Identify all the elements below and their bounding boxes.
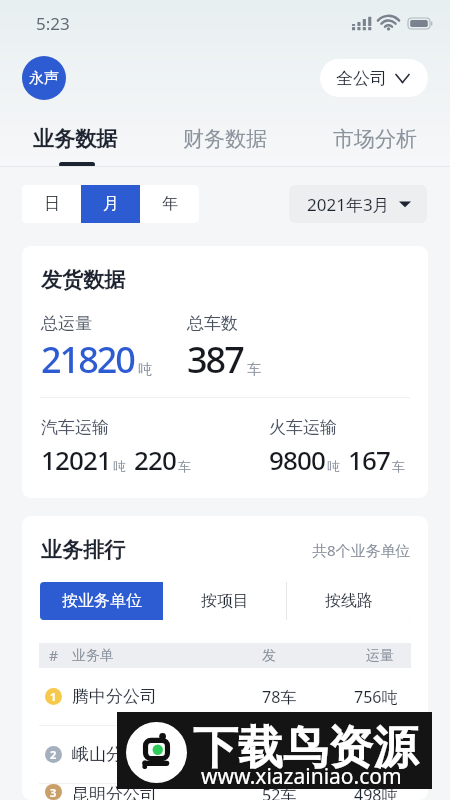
staticText: 21820 — [41, 335, 134, 384]
staticText: 业务数据 — [33, 126, 117, 152]
button[interactable]: 财务数据 — [150, 126, 300, 162]
staticText: 1 — [50, 689, 57, 704]
staticText: 66车 — [262, 744, 297, 766]
button[interactable]: 年 — [140, 185, 199, 223]
staticText: 220 — [134, 442, 176, 477]
staticText: 财务数据 — [183, 126, 267, 152]
staticText: 610吨 — [354, 744, 398, 766]
staticText: 78车 — [262, 686, 297, 708]
staticText: 3 — [50, 785, 57, 800]
staticText: 按项目 — [201, 591, 249, 611]
staticText: 52车 — [262, 784, 297, 800]
staticText: www.xiazainiao.com — [201, 762, 402, 791]
staticText: 发 — [262, 647, 276, 665]
staticText: 峨山分公司 — [72, 744, 157, 765]
staticText: 总车数 — [187, 313, 238, 334]
staticText: 756吨 — [354, 686, 398, 708]
staticText: 按业务单位 — [62, 591, 142, 611]
staticText: 12021 — [41, 442, 111, 477]
staticText: 车 — [392, 458, 405, 474]
staticText: 火车运输 — [269, 417, 337, 438]
staticText: 汽车运输 — [41, 417, 109, 438]
staticText: 2021年3月 — [307, 193, 390, 216]
staticText: 按线路 — [325, 591, 373, 611]
button[interactable]: 2 — [22, 726, 428, 783]
button[interactable]: 按线路 — [287, 582, 410, 620]
staticText: 腾中分公司 — [72, 686, 157, 707]
staticText: 共8个业务单位 — [312, 540, 411, 560]
staticText: 车 — [247, 361, 261, 379]
button[interactable]: Profile — [22, 56, 66, 100]
staticText: 总运量 — [41, 313, 92, 334]
button[interactable]: 月 — [81, 185, 140, 223]
staticText: 2 — [50, 747, 57, 762]
button[interactable]: 2021年3月 — [289, 185, 427, 223]
staticText: 吨 — [113, 458, 126, 474]
staticText: 发货数据 — [41, 267, 125, 293]
staticText: 下载鸟资源 — [193, 720, 418, 777]
button[interactable]: 日 — [22, 185, 81, 223]
staticText: 车 — [178, 458, 191, 474]
staticText: 全公司 — [336, 68, 387, 89]
button[interactable]: 1 — [22, 668, 428, 725]
button[interactable]: 按项目 — [163, 582, 286, 620]
staticText: 月 — [103, 194, 119, 214]
staticText: 年 — [162, 194, 178, 214]
staticText: # — [49, 646, 59, 665]
staticText: 业务排行 — [41, 537, 125, 563]
button[interactable]: 3 — [22, 784, 428, 800]
staticText: 387 — [187, 335, 243, 384]
staticText: 吨 — [327, 458, 340, 474]
staticText: 永声 — [29, 69, 59, 88]
staticText: 业务单 — [72, 647, 114, 665]
staticText: 昆明分公司 — [72, 784, 157, 800]
staticText: 运量 — [366, 647, 394, 665]
staticText: 吨 — [138, 361, 152, 379]
staticText: 日 — [44, 194, 60, 214]
staticText: 市场分析 — [333, 126, 417, 152]
button[interactable]: 市场分析 — [300, 126, 450, 162]
staticText: 167 — [348, 442, 390, 477]
staticText: 498吨 — [354, 784, 398, 800]
staticText: 9800 — [269, 442, 325, 477]
staticText: 5:23 — [36, 12, 70, 35]
button[interactable]: 全公司 — [320, 59, 428, 97]
button[interactable]: 按业务单位 — [40, 582, 163, 620]
button[interactable]: 业务数据 — [0, 126, 150, 167]
